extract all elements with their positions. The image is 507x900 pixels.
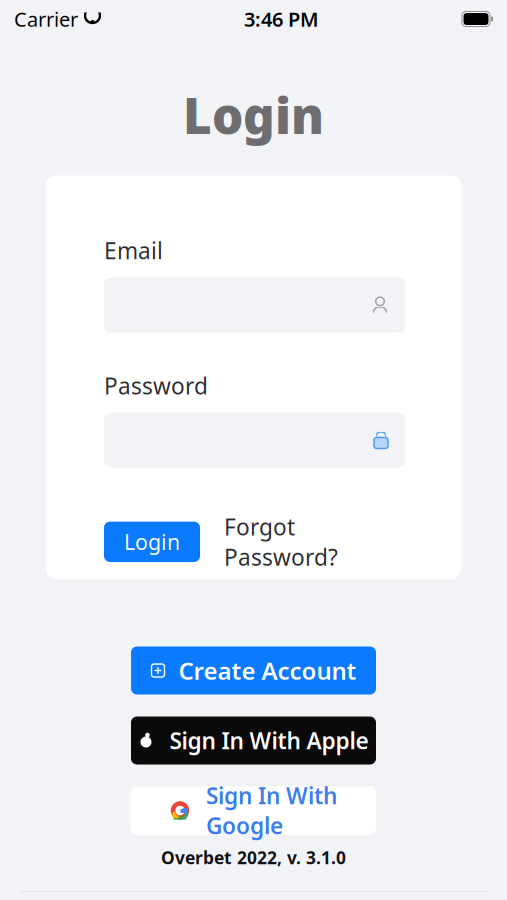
staticText: Carrier bbox=[14, 6, 78, 32]
staticText: Sign In With Apple bbox=[169, 725, 368, 756]
staticText: Sign In With Google bbox=[206, 780, 337, 841]
button[interactable]: Sign In With Google bbox=[131, 786, 376, 834]
button[interactable]: Forgot Password? bbox=[224, 512, 338, 572]
button[interactable]: Create Account bbox=[131, 646, 376, 694]
staticText: Login bbox=[124, 528, 180, 556]
button[interactable]: Login bbox=[104, 522, 200, 562]
staticText: Login bbox=[183, 82, 324, 147]
staticText: Email bbox=[104, 235, 163, 266]
button[interactable]: Sign In With Apple bbox=[131, 716, 376, 764]
staticText: Password bbox=[104, 371, 208, 401]
staticText: Create Account bbox=[178, 655, 356, 686]
staticText: Overbet 2022, v. 3.1.0 bbox=[161, 846, 346, 869]
staticText: Forgot Password? bbox=[224, 512, 338, 572]
staticText: 3:46 PM bbox=[244, 6, 319, 32]
